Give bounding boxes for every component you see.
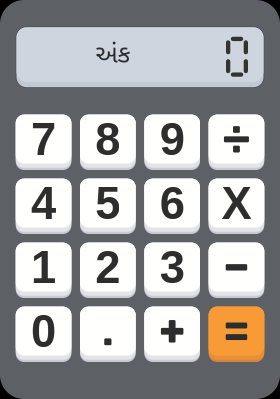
button[interactable]: 6 bbox=[144, 179, 200, 234]
staticText: અંક bbox=[95, 40, 130, 73]
button[interactable]: 3 bbox=[144, 243, 200, 298]
staticText: 4 bbox=[31, 178, 56, 229]
staticText: 3 bbox=[160, 242, 185, 293]
button[interactable]: Equals bbox=[209, 307, 264, 362]
staticText: 1 bbox=[31, 242, 56, 293]
button[interactable]: 0 bbox=[16, 307, 71, 362]
staticText: 6 bbox=[160, 178, 185, 229]
staticText: 0 bbox=[31, 306, 56, 357]
staticText: 7 bbox=[31, 114, 56, 165]
staticText: 2 bbox=[95, 242, 120, 293]
button[interactable]: 9 bbox=[144, 115, 200, 170]
button[interactable]: 7 bbox=[16, 115, 71, 170]
staticText: X bbox=[221, 178, 251, 229]
button[interactable]: Decimal point bbox=[80, 307, 136, 362]
staticText: 5 bbox=[95, 178, 120, 229]
staticText: 8 bbox=[95, 114, 120, 165]
button[interactable]: 2 bbox=[80, 243, 136, 298]
button[interactable]: Plus bbox=[144, 307, 200, 362]
button[interactable]: 1 bbox=[16, 243, 71, 298]
button[interactable]: 4 bbox=[16, 179, 71, 234]
button[interactable]: 8 bbox=[80, 115, 136, 170]
button[interactable]: Minus bbox=[209, 243, 264, 298]
staticText: 9 bbox=[160, 114, 185, 165]
button[interactable]: Multiply bbox=[209, 179, 264, 234]
button[interactable]: Divide bbox=[209, 115, 264, 170]
button[interactable]: 5 bbox=[80, 179, 136, 234]
